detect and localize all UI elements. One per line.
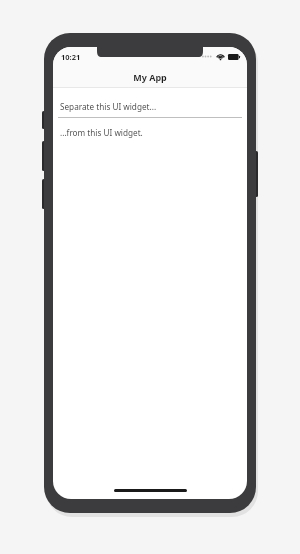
- staticText: ...from this UI widget.: [60, 127, 143, 138]
- button[interactable]: ...from this UI widget.: [53, 124, 247, 140]
- staticText: Separate this UI widget...: [60, 101, 157, 112]
- button[interactable]: Separate this UI widget...: [53, 98, 247, 114]
- staticText: My App: [133, 71, 167, 83]
- staticText: 10:21: [61, 52, 81, 62]
- button[interactable]: My App: [53, 66, 247, 87]
